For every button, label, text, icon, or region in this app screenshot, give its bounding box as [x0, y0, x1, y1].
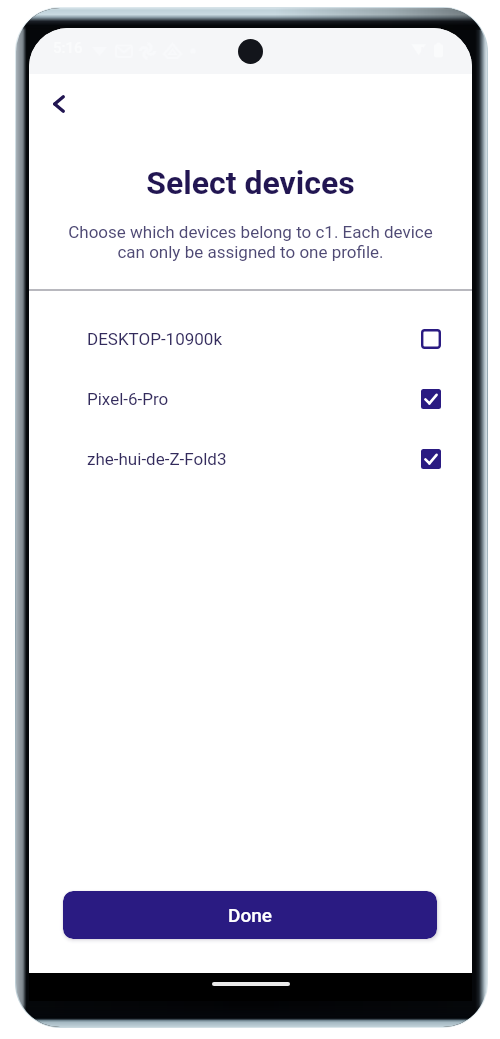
button[interactable]: Done: [63, 891, 437, 939]
staticText: zhe-hui-de-Z-Fold3: [87, 449, 227, 469]
button[interactable]: Back: [35, 80, 83, 128]
staticText: Pixel-6-Pro: [87, 389, 169, 409]
button[interactable]: zhe-hui-de-Z-Fold3: [29, 429, 472, 489]
staticText: Choose which devices belong to c1. Each …: [63, 222, 438, 262]
button[interactable]: DESKTOP-10900k: [29, 309, 472, 369]
staticText: Done: [228, 904, 272, 926]
button[interactable]: Pixel-6-Pro: [29, 369, 472, 429]
staticText: Select devices: [29, 164, 472, 202]
staticText: DESKTOP-10900k: [87, 329, 222, 349]
